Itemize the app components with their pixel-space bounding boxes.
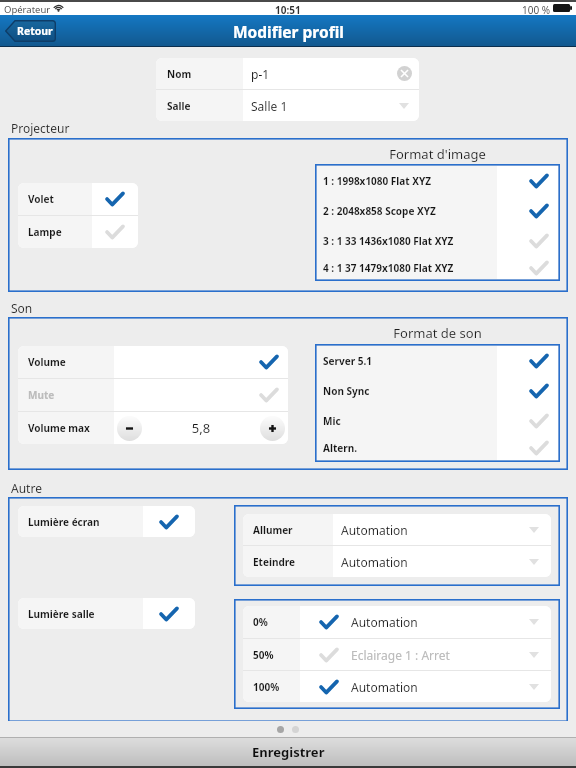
button[interactable]: 3 : 1 33 1436x1080 Flat XYZ	[317, 226, 558, 256]
staticText: Automation	[341, 554, 408, 570]
staticText: Volume	[28, 355, 66, 369]
button[interactable]: Enregistrer	[0, 737, 576, 766]
staticText: Non Sync	[323, 384, 370, 398]
staticText: 10:51	[275, 3, 301, 17]
staticText: Autre	[11, 480, 42, 496]
button[interactable]: Altern.	[317, 436, 558, 460]
staticText: Nom	[167, 67, 192, 81]
staticText: Eclairage 1 : Arret	[351, 647, 450, 663]
other: Clear	[397, 66, 412, 81]
button[interactable]: 0%	[243, 606, 551, 638]
staticText: Altern.	[323, 441, 357, 455]
staticText: Enregistrer	[252, 743, 325, 761]
staticText: Opérateur	[4, 3, 51, 16]
button[interactable]: 2 : 2048x858 Scope XYZ	[317, 196, 558, 226]
button[interactable]: Increase	[260, 416, 285, 441]
staticText: p-1	[251, 66, 270, 82]
button[interactable]: Allumer	[243, 514, 551, 545]
button[interactable]: Eteindre	[243, 546, 551, 577]
button[interactable]: 100%	[243, 671, 551, 702]
staticText: Mute	[28, 388, 55, 402]
staticText: Automation	[341, 522, 408, 538]
staticText: Format de son	[315, 324, 560, 342]
staticText: Automation	[351, 679, 418, 695]
staticText: 2 : 2048x858 Scope XYZ	[323, 204, 436, 218]
staticText: 4 : 1 37 1479x1080 Flat XYZ	[323, 261, 454, 275]
button[interactable]: Mic	[317, 406, 558, 436]
button[interactable]: Volume	[18, 346, 288, 378]
staticText: Modifier profil	[233, 21, 344, 42]
staticText: Mic	[323, 414, 341, 428]
staticText: Volet	[28, 192, 54, 206]
button[interactable]: Decrease	[117, 416, 142, 441]
button[interactable]: 4 : 1 37 1479x1080 Flat XYZ	[317, 256, 558, 279]
button[interactable]: 50%	[243, 639, 551, 670]
staticText: 100%	[253, 680, 280, 694]
staticText: Son	[11, 300, 33, 316]
staticText: Volume max	[28, 421, 90, 435]
button[interactable]: 1 : 1998x1080 Flat XYZ	[317, 166, 558, 196]
staticText: Lampe	[28, 225, 62, 239]
staticText: 0%	[253, 615, 268, 629]
staticText: Projecteur	[11, 120, 70, 136]
button[interactable]: Salle	[156, 90, 419, 121]
staticText: Retour	[17, 24, 53, 38]
staticText: 50%	[253, 648, 274, 662]
button[interactable]: Lampe	[18, 216, 138, 248]
staticText: Server 5.1	[323, 354, 372, 368]
staticText: 3 : 1 33 1436x1080 Flat XYZ	[323, 234, 454, 248]
staticText: Salle	[167, 99, 191, 113]
staticText: Eteindre	[253, 555, 295, 569]
staticText: 100 %	[522, 3, 551, 17]
staticText: Lumière écran	[28, 515, 100, 529]
button[interactable]: Nom	[156, 58, 419, 89]
button[interactable]: Non Sync	[317, 376, 558, 406]
button[interactable]: Server 5.1	[317, 346, 558, 376]
staticText: Allumer	[253, 523, 293, 537]
staticText: 1 : 1998x1080 Flat XYZ	[323, 174, 432, 188]
staticText: 5,8	[142, 419, 260, 437]
button[interactable]: Lumière écran	[18, 506, 195, 537]
staticText: Salle 1	[251, 98, 288, 114]
staticText: Format d'image	[315, 145, 560, 163]
button[interactable]: Lumière salle	[18, 598, 195, 629]
button[interactable]: Mute	[18, 379, 288, 411]
button[interactable]: Volet	[18, 183, 138, 215]
staticText: Lumière salle	[28, 607, 95, 621]
staticText: Automation	[351, 614, 418, 630]
button[interactable]: Retour	[5, 20, 56, 42]
